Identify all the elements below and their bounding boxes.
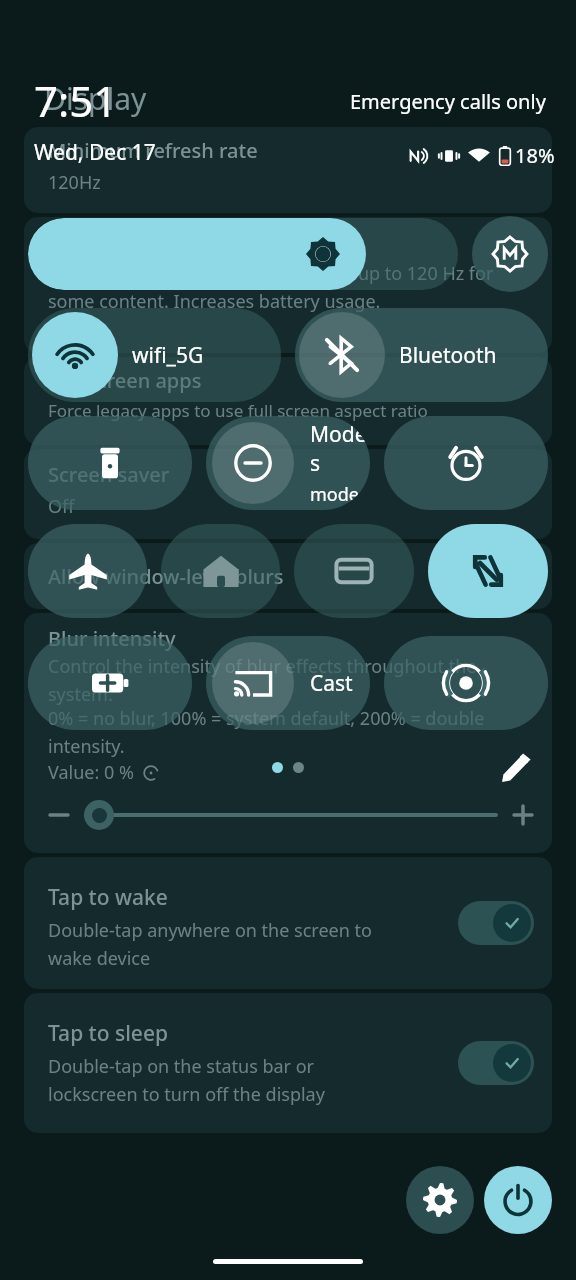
staticText: Double-tap on the status bar or lockscre…: [48, 1054, 325, 1106]
staticText: Wed, Dec 17: [34, 138, 156, 167]
staticText: Force legacy apps to use full screen asp…: [48, 399, 428, 422]
staticText: Modes: [310, 420, 370, 478]
staticText: Value: 0 %: [48, 760, 134, 785]
button[interactable]: Flashlight: [28, 416, 192, 510]
button[interactable]: Tap to wake: [24, 857, 552, 989]
staticText: Screen saver: [48, 461, 170, 488]
staticText: Minimum refresh rate: [48, 137, 258, 164]
staticText: 120Hz: [48, 170, 101, 195]
button[interactable]: Settings: [406, 1166, 474, 1234]
button[interactable]: Modes: [206, 416, 370, 510]
staticText: Tap to wake: [48, 883, 168, 912]
staticText: Tap to sleep: [48, 1019, 168, 1048]
staticText: 7:51: [34, 72, 118, 129]
staticText: Off: [48, 494, 75, 519]
staticText: Bluetooth: [399, 341, 497, 370]
button[interactable]: Power: [484, 1166, 552, 1234]
staticText: modes: [310, 482, 368, 507]
staticText: Automatically raises the refresh rate up…: [48, 261, 530, 313]
staticText: Blur intensity: [48, 625, 176, 652]
button[interactable]: Screen record: [384, 636, 548, 730]
staticText: Control the intensity of blur effects th…: [48, 654, 534, 706]
button[interactable]: Edit tiles: [500, 750, 534, 784]
button[interactable]: Tap to wake: [458, 901, 534, 945]
staticText: Allow window-level blurs: [48, 563, 284, 590]
button[interactable]: Home: [161, 524, 280, 618]
button[interactable]: Bluetooth: [295, 308, 548, 402]
button[interactable]: Cast: [206, 636, 370, 730]
button[interactable]: wifi_5G: [28, 308, 281, 402]
button[interactable]: Tap to sleep: [458, 1041, 534, 1085]
staticText: Display: [44, 78, 147, 119]
staticText: Full screen apps: [48, 367, 202, 394]
staticText: 18%: [515, 142, 555, 169]
button[interactable]: Battery share: [28, 636, 192, 730]
staticText: wifi_5G: [132, 341, 204, 370]
staticText: Emergency calls only: [350, 88, 546, 115]
staticText: Cast: [310, 669, 353, 698]
button[interactable]: Magnification: [472, 216, 548, 292]
button[interactable]: Wallet: [294, 524, 414, 618]
button[interactable]: Auto rotate: [428, 524, 548, 618]
staticText: 0% = no blur, 100% = system default, 200…: [48, 706, 534, 758]
button[interactable]: Alarm: [384, 416, 548, 510]
staticText: Double-tap anywhere on the screen to wak…: [48, 918, 372, 970]
button[interactable]: Airplane mode: [28, 524, 147, 618]
button[interactable]: Brightness: [28, 218, 458, 290]
button[interactable]: Tap to sleep: [24, 993, 552, 1133]
